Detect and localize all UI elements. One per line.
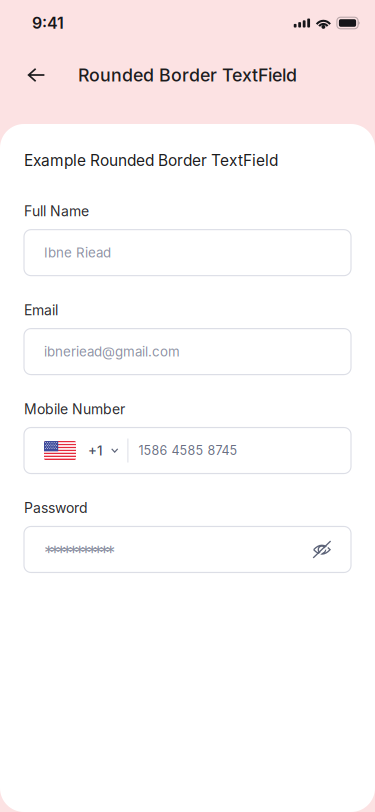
button[interactable]: *********** <box>24 526 351 572</box>
staticText: 1586 4585 8745 <box>138 443 237 458</box>
staticText: Ibne Riead <box>44 245 111 261</box>
staticText: Rounded Border TextField <box>78 64 297 86</box>
staticText: Password <box>24 499 88 516</box>
staticText: *********** <box>44 541 115 563</box>
staticText: +1 <box>88 442 103 459</box>
staticText: ibneriead@gmail.com <box>44 343 180 360</box>
staticText: Mobile Number <box>24 401 125 417</box>
button[interactable]: Back <box>14 60 56 90</box>
staticText: Full Name <box>24 203 89 220</box>
button[interactable]: Ibne Riead <box>24 230 351 276</box>
staticText: 9:41 <box>32 13 64 33</box>
staticText: Example Rounded Border TextField <box>24 151 278 170</box>
button[interactable]: ibneriead@gmail.com <box>24 329 351 375</box>
button[interactable]: +1 <box>24 427 351 473</box>
staticText: Email <box>24 302 58 319</box>
